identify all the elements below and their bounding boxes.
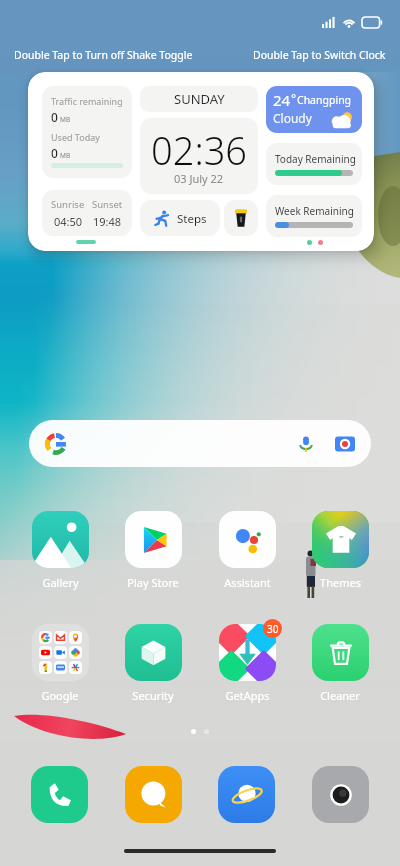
button[interactable]: Camera: [312, 766, 369, 823]
staticText: Cleaner: [320, 688, 360, 703]
button[interactable]: Security: [117, 624, 189, 703]
button[interactable]: Google: [24, 624, 96, 703]
button[interactable]: Browser: [218, 766, 275, 823]
button[interactable]: Cleaner: [304, 624, 376, 703]
staticText: Sunrise: [51, 198, 85, 211]
staticText: Traffic remaining: [51, 95, 123, 107]
staticText: MB: [60, 115, 71, 124]
staticText: 19:48: [93, 214, 122, 229]
staticText: Google: [41, 688, 79, 703]
other: Google Lens: [335, 434, 355, 454]
staticText: SUNDAY: [174, 90, 225, 108]
button[interactable]: SUNDAY: [140, 86, 258, 112]
button[interactable]: Messages: [125, 766, 182, 823]
button[interactable]: 24: [266, 86, 362, 133]
button[interactable]: Voice search: [29, 420, 371, 467]
staticText: Assistant: [224, 575, 271, 590]
staticText: GetApps: [225, 688, 270, 703]
staticText: Cloudy: [273, 110, 312, 126]
staticText: 03 July 22: [174, 171, 224, 186]
staticText: Week Remaining: [275, 204, 354, 218]
staticText: Changping: [297, 93, 352, 107]
button[interactable]: Themes: [304, 511, 376, 590]
staticText: 0: [51, 145, 58, 161]
staticText: °: [291, 90, 297, 106]
staticText: Play Store: [127, 575, 179, 590]
staticText: Gallery: [42, 575, 79, 590]
staticText: 0: [51, 109, 58, 125]
staticText: Steps: [177, 211, 207, 227]
button[interactable]: Phone: [31, 766, 88, 823]
button[interactable]: Traffic remaining: [42, 86, 132, 178]
staticText: Security: [132, 688, 174, 703]
other: Voice search: [297, 435, 315, 453]
button[interactable]: Flashlight: [224, 200, 258, 236]
staticText: Sunset: [92, 198, 123, 211]
button[interactable]: Sunrise: [42, 190, 132, 236]
staticText: 24: [273, 90, 291, 110]
staticText: Double Tap to Switch Clock: [253, 48, 386, 62]
button[interactable]: 30: [211, 624, 283, 703]
staticText: 02:36: [151, 124, 248, 176]
button[interactable]: Assistant: [211, 511, 283, 590]
staticText: MB: [60, 151, 71, 160]
staticText: Today Remaining: [275, 152, 356, 166]
button[interactable]: Week Remaining: [266, 195, 362, 237]
staticText: Used Today: [51, 131, 100, 143]
staticText: 30: [267, 622, 279, 636]
button[interactable]: Today Remaining: [266, 143, 362, 185]
button[interactable]: Play Store: [117, 511, 189, 590]
button[interactable]: Steps: [140, 200, 220, 236]
button[interactable]: Gallery: [24, 511, 96, 590]
button[interactable]: 02:36: [140, 118, 258, 194]
staticText: Double Tap to Turn off Shake Toggle: [14, 48, 193, 62]
staticText: Themes: [320, 575, 361, 590]
staticText: 04:50: [54, 214, 83, 229]
